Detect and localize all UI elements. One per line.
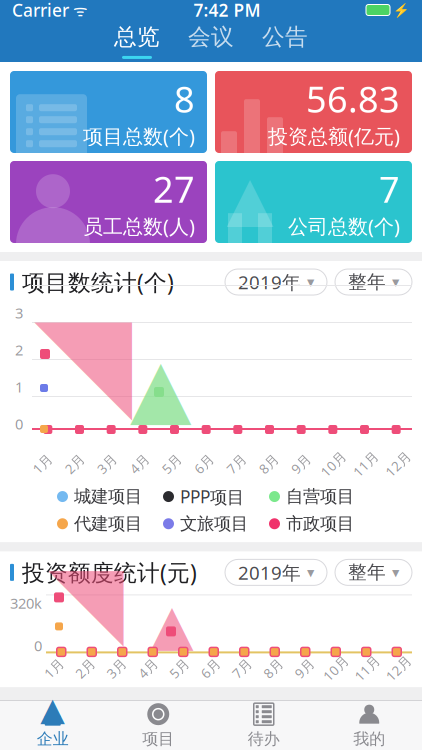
staticText: 待办 — [248, 729, 280, 749]
staticText: 5月 — [168, 659, 189, 677]
staticText: 项目数统计(个) — [22, 267, 174, 297]
staticText: 9月 — [290, 455, 311, 473]
staticText: 3月 — [106, 659, 127, 677]
button[interactable]: 待办 — [211, 701, 316, 749]
staticText: 3 — [15, 303, 23, 322]
staticText: 1月 — [43, 659, 64, 677]
button[interactable]: 整年 — [335, 269, 412, 295]
staticText: 6月 — [193, 455, 214, 473]
staticText: ▲ — [150, 593, 193, 656]
staticText: 自营项目 — [286, 486, 354, 507]
staticText: 文旅项目 — [180, 513, 248, 534]
staticText: 8月 — [258, 455, 279, 473]
staticText: 1月 — [32, 455, 53, 473]
staticText: 7 — [379, 165, 400, 213]
staticText: ◥ — [48, 544, 124, 656]
button[interactable]: 项目 — [105, 701, 211, 749]
staticText: 27 — [153, 165, 195, 213]
button[interactable]: 整年 — [335, 559, 412, 585]
staticText: ◥ — [34, 288, 132, 433]
staticText: 12月 — [383, 455, 412, 473]
staticText: ▲ — [226, 163, 273, 233]
staticText: 城建项目 — [74, 486, 142, 507]
staticText: 项目 — [142, 729, 174, 749]
staticText: 企业 — [37, 729, 69, 749]
button[interactable]: 8 — [10, 71, 207, 153]
staticText: 320k — [10, 593, 42, 613]
staticText: 2019年 — [238, 560, 301, 585]
staticText: 10月 — [321, 659, 350, 677]
staticText: 2月 — [74, 659, 95, 677]
staticText: 5月 — [161, 455, 182, 473]
staticText: 8 — [174, 75, 195, 123]
button[interactable]: 总览 — [106, 21, 168, 61]
staticText: 3月 — [96, 455, 117, 473]
staticText: 公告 — [262, 23, 308, 51]
staticText: 投资总额(亿元) — [268, 123, 400, 149]
staticText: 员工总数(人) — [83, 213, 195, 239]
button[interactable]: 我的 — [316, 701, 422, 749]
staticText: 会议 — [188, 23, 234, 51]
staticText: ᯤ — [69, 0, 88, 21]
staticText: Carrier — [12, 0, 69, 21]
staticText: 整年 — [348, 561, 386, 584]
staticText: 整年 — [348, 270, 386, 293]
button[interactable]: 27 — [10, 161, 207, 243]
staticText: 4月 — [129, 455, 150, 473]
staticText: 市政项目 — [286, 513, 354, 534]
staticText: ▾ — [392, 564, 399, 581]
staticText: 7月 — [231, 659, 252, 677]
staticText: 11月 — [352, 659, 381, 677]
staticText: ⚡ — [393, 2, 410, 18]
staticText: ▾ — [307, 564, 314, 581]
staticText: 总览 — [114, 23, 160, 51]
staticText: PPP项目 — [180, 485, 244, 508]
staticText: 4月 — [137, 659, 158, 677]
staticText: 6月 — [200, 659, 221, 677]
button[interactable]: ▲ — [0, 701, 105, 749]
staticText: 0 — [34, 636, 42, 655]
button[interactable]: 会议 — [180, 21, 242, 61]
staticText: ▾ — [392, 274, 399, 290]
staticText: 公司总数(个) — [288, 213, 400, 239]
staticText: 2019年 — [238, 270, 301, 294]
staticText: 10月 — [319, 455, 348, 473]
staticText: ▲ — [130, 342, 192, 433]
staticText: 代建项目 — [74, 513, 142, 534]
staticText: ▾ — [307, 274, 314, 290]
staticText: 8月 — [262, 659, 283, 677]
button[interactable]: 公告 — [254, 21, 316, 61]
staticText: 1 — [15, 377, 23, 396]
staticText: 7月 — [226, 455, 247, 473]
staticText: 12月 — [384, 659, 413, 677]
staticText: 0 — [15, 414, 23, 433]
staticText: 2 — [15, 340, 23, 359]
button[interactable]: 2019年 — [225, 559, 327, 585]
button[interactable]: 56.83 — [215, 71, 412, 153]
staticText: 我的 — [353, 729, 385, 749]
button[interactable]: 2019年 — [225, 269, 327, 295]
staticText: 9月 — [294, 659, 315, 677]
staticText: 56.83 — [306, 75, 400, 123]
staticText: ▲ — [40, 691, 65, 727]
staticText: 11月 — [351, 455, 380, 473]
staticText: 2月 — [64, 455, 85, 473]
staticText: 项目总数(个) — [83, 123, 195, 149]
staticText: 投资额度统计(元) — [22, 557, 197, 587]
button[interactable]: ▲ — [215, 161, 412, 243]
staticText: 7:42 PM — [193, 0, 260, 21]
